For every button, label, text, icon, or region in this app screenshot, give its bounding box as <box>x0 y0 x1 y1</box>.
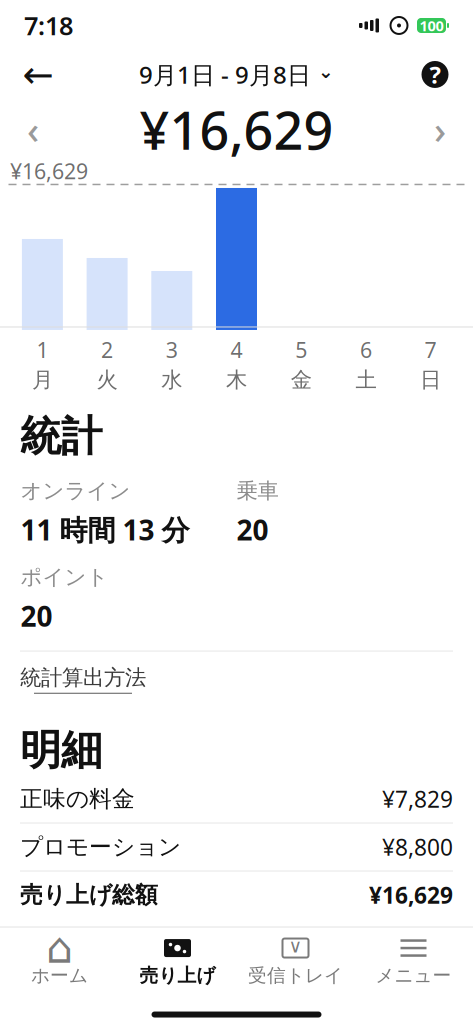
staticText: プロモーション <box>20 833 181 861</box>
staticText: 水 <box>161 367 182 393</box>
staticText: › <box>434 105 446 154</box>
staticText: ← <box>22 53 53 96</box>
button[interactable]: 戻る <box>16 52 60 96</box>
staticText: 3 <box>166 335 178 364</box>
staticText: ポイント <box>20 564 108 590</box>
staticText: 7 <box>425 335 437 364</box>
button[interactable]: ⌂ <box>0 935 118 987</box>
staticText: 統計算出方法 <box>20 665 146 691</box>
staticText: ¥7,829 <box>382 784 453 814</box>
staticText: 20 <box>20 597 52 635</box>
staticText: ∨ <box>288 935 302 957</box>
staticText: オンライン <box>20 478 130 504</box>
staticText: 売り上げ <box>139 964 215 987</box>
staticText: 6 <box>360 335 372 364</box>
staticText: 統計 <box>20 411 102 462</box>
staticText: ¥8,800 <box>382 832 453 862</box>
staticText: ‹ <box>27 105 39 154</box>
staticText: ⌄ <box>318 61 334 82</box>
staticText: ホーム <box>31 964 88 987</box>
staticText: ⌂ <box>46 924 73 972</box>
staticText: 20 <box>236 511 268 548</box>
staticText: 7:18 <box>24 9 73 42</box>
staticText: ? <box>429 58 440 90</box>
staticText: 金 <box>291 367 312 393</box>
staticText: 受信トレイ <box>248 964 343 987</box>
staticText: ¥16,629 <box>10 157 88 185</box>
staticText: 100 <box>419 16 443 35</box>
staticText: 木 <box>226 367 247 393</box>
button[interactable]: 統計算出方法 <box>20 658 146 701</box>
staticText: ¥16,629 <box>139 95 333 164</box>
staticText: 9月1日 - 9月8日 <box>139 58 311 90</box>
staticText: 日 <box>420 367 441 393</box>
button[interactable]: 次の週 <box>419 106 461 152</box>
staticText: 5 <box>295 335 307 364</box>
button[interactable]: 前の週 <box>12 106 54 152</box>
staticText: 土 <box>355 367 376 393</box>
staticText: 乗車 <box>236 478 278 504</box>
button[interactable]: 9月1日 - 9月8日 <box>129 52 344 96</box>
button[interactable]: ヘルプ <box>413 52 457 96</box>
staticText: 4 <box>230 335 242 364</box>
button[interactable]: ∨ <box>236 935 354 987</box>
staticText: 正味の料金 <box>20 785 135 813</box>
staticText: 火 <box>97 367 118 393</box>
button[interactable]: メニュー <box>354 935 472 987</box>
staticText: 11 時間 13 分 <box>20 511 189 548</box>
staticText: 1 <box>36 335 48 364</box>
button[interactable]: 売り上げ <box>118 935 236 987</box>
staticText: 明細 <box>20 725 102 776</box>
staticText: 売り上げ総額 <box>20 881 158 909</box>
staticText: メニュー <box>375 964 451 987</box>
staticText: 月 <box>32 367 53 393</box>
staticText: ¥16,629 <box>369 880 453 910</box>
staticText: 2 <box>101 335 113 364</box>
